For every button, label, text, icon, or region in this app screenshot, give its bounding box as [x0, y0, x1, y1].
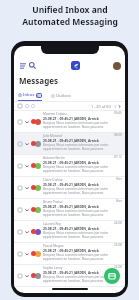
staticText: 25.08.21 - 09:45:21 JARDIN, Arnick [43, 226, 99, 231]
button[interactable]: Pascal Magne [14, 243, 125, 265]
button[interactable]: More options [31, 104, 35, 108]
staticText: 25.08.21 - 09:45:21 JARDIN, Arnick [43, 270, 99, 275]
staticText: Bruno Pastor [43, 200, 63, 204]
button[interactable]: Previous page [113, 104, 117, 108]
button[interactable]: Sophie Leroy [14, 265, 125, 287]
button[interactable]: Home [71, 61, 80, 70]
button[interactable]: Next page [117, 104, 121, 108]
button[interactable]: Antoine Bertin [14, 155, 125, 177]
staticText: 25.08.21 - 09:45:21 JARDIN, Arnick [43, 160, 99, 165]
staticText: 25.08.21 - 09:45:21 JARDIN, Arnick [43, 116, 99, 121]
button[interactable]: Select all [18, 104, 22, 108]
button[interactable]: Inbox [18, 92, 42, 101]
staticText: 07:12 [114, 155, 122, 159]
staticText: Bonjour, Nous sommes interesses par votr… [43, 165, 122, 173]
staticText: Claire Dufour [43, 178, 63, 182]
staticText: 25.08.21 - 09:45:21 JARDIN, Arnick [43, 182, 99, 187]
staticText: Hier [116, 177, 122, 181]
button[interactable]: Maxime Cuipou [14, 111, 125, 133]
button[interactable]: Menu [18, 61, 27, 70]
button[interactable]: Laurent Roy [14, 221, 125, 243]
staticText: Hier [116, 199, 122, 203]
staticText: Laurent Roy [43, 222, 61, 226]
staticText: Outbox [56, 93, 71, 99]
staticText: 24.08 [114, 221, 122, 225]
staticText: Sophie Leroy [43, 266, 63, 270]
staticText: 23.08 [114, 243, 122, 247]
button[interactable]: Refresh [25, 104, 29, 108]
button[interactable]: Outbox [51, 92, 71, 99]
staticText: Inbox [23, 92, 35, 98]
staticText: 25.08.21 - 09:45:21 JARDIN, Arnick [43, 248, 99, 253]
staticText: 08:30 [114, 133, 122, 137]
staticText: 25.08.21 - 09:45:21 JARDIN, Arnick [43, 138, 99, 143]
staticText: Bonjour, Nous sommes interesses par votr… [43, 187, 122, 195]
staticText: Pascal Magne [43, 244, 64, 248]
button[interactable]: Search [28, 61, 37, 70]
staticText: 10 [37, 93, 41, 98]
staticText: Messages [19, 75, 58, 86]
staticText: Bonjour, Nous sommes interesses par votr… [43, 209, 122, 217]
button[interactable]: Bruno Pastor [14, 199, 125, 221]
staticText: Julie Morand [43, 134, 62, 138]
staticText: Unified Inbox and [32, 4, 108, 16]
staticText: Maxime Cuipou [43, 112, 67, 116]
staticText: 1 - 20 of 60 [91, 104, 111, 109]
staticText: 09:45 [114, 111, 122, 115]
staticText: Bonjour, Nous sommes interesses par votr… [43, 253, 122, 261]
staticText: Bonjour, Nous sommes interesses par votr… [43, 231, 122, 239]
staticText: Bonjour, Nous sommes interesses par votr… [43, 121, 122, 129]
staticText: 25.08.21 - 09:45:21 JARDIN, Arnick [43, 204, 99, 209]
staticText: 22.08 [114, 265, 122, 269]
staticText: Automated Messaging [22, 16, 118, 28]
staticText: Bonjour, Nous sommes interesses par votr… [43, 275, 122, 283]
staticText: Bonjour, Nous sommes interesses par votr… [43, 143, 122, 151]
staticText: Antoine Bertin [43, 156, 65, 160]
button[interactable]: Julie Morand [14, 133, 125, 155]
button[interactable]: New message [104, 268, 120, 284]
button[interactable]: Account [113, 62, 121, 70]
button[interactable]: Claire Dufour [14, 177, 125, 199]
